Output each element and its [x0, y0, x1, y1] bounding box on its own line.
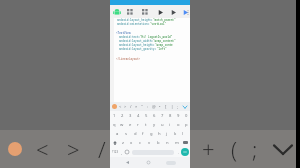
- button[interactable]: n: [163, 138, 172, 147]
- staticText: k: [174, 131, 177, 137]
- button[interactable]: c: [136, 138, 145, 147]
- button[interactable]: t: [142, 120, 150, 129]
- button[interactable]: 7: [158, 111, 166, 120]
- button[interactable]: >: [123, 102, 128, 111]
- button[interactable]: x: [127, 138, 136, 147]
- button[interactable]: ;: [175, 102, 181, 111]
- button[interactable]: Home: [145, 159, 152, 166]
- button[interactable]: Sync project: [182, 8, 188, 16]
- button[interactable]: o: [174, 120, 182, 129]
- staticText: v: [148, 140, 151, 146]
- button[interactable]: ": [139, 102, 145, 111]
- button[interactable]: 8: [166, 111, 174, 120]
- button[interactable]: [: [163, 102, 169, 111]
- button[interactable]: ×: [133, 102, 139, 111]
- staticText: s: [125, 131, 128, 137]
- staticText: m: [175, 140, 179, 146]
- button[interactable]: 9: [174, 111, 182, 120]
- button[interactable]: /: [128, 102, 133, 111]
- button[interactable]: Shift: [110, 138, 119, 147]
- staticText: g: [150, 131, 153, 137]
- staticText: 9: [177, 113, 180, 119]
- button[interactable]: s: [122, 129, 131, 138]
- button[interactable]: e: [126, 120, 134, 129]
- staticText: 8: [169, 113, 172, 119]
- staticText: x: [130, 140, 133, 146]
- button[interactable]: i: [166, 120, 174, 129]
- staticText: r: [137, 122, 139, 128]
- staticText: "Hi! LogcatIs_world": [140, 35, 173, 39]
- staticText: 1: [113, 113, 116, 119]
- staticText: android:text=: [119, 35, 140, 39]
- button[interactable]: 6: [150, 111, 158, 120]
- staticText: y: [153, 122, 156, 128]
- staticText: p: [185, 122, 188, 128]
- button[interactable]: :: [145, 102, 151, 111]
- button[interactable]: m: [172, 138, 181, 147]
- staticText: ,: [121, 150, 123, 155]
- staticText: >: [67, 134, 80, 164]
- button[interactable]: u: [158, 120, 166, 129]
- staticText: :: [147, 104, 149, 109]
- staticText: a: [116, 131, 119, 137]
- button[interactable]: v: [145, 138, 154, 147]
- button[interactable]: Debug: [169, 8, 177, 16]
- button[interactable]: 0: [182, 111, 190, 120]
- staticText: </LinearLayout>: [116, 57, 141, 61]
- staticText: "wrap_content": [153, 39, 176, 43]
- staticText: n: [166, 140, 169, 146]
- button[interactable]: Android Studio: [112, 7, 122, 17]
- staticText: •: [159, 104, 161, 109]
- button[interactable]: 1: [110, 111, 118, 120]
- button[interactable]: l: [179, 129, 187, 138]
- button[interactable]: z: [119, 138, 127, 147]
- button[interactable]: d: [131, 129, 139, 138]
- staticText: 0: [185, 113, 188, 119]
- button[interactable]: p: [182, 120, 190, 129]
- button[interactable]: Symbols: [111, 147, 119, 157]
- button[interactable]: b: [154, 138, 163, 147]
- button[interactable]: k: [171, 129, 179, 138]
- button[interactable]: j: [163, 129, 171, 138]
- staticText: android:layout_width=: [119, 39, 153, 43]
- staticText: l: [182, 131, 184, 137]
- staticText: android:layout_height=: [119, 43, 155, 47]
- button[interactable]: .: [176, 147, 181, 157]
- staticText: @: [152, 104, 156, 109]
- button[interactable]: g: [147, 129, 155, 138]
- button[interactable]: <: [118, 102, 123, 111]
- button[interactable]: Change language: [124, 147, 130, 157]
- button[interactable]: Recent apps: [166, 161, 176, 165]
- button[interactable]: a: [113, 129, 122, 138]
- button[interactable]: 2: [118, 111, 126, 120]
- staticText: ×: [135, 104, 138, 109]
- button[interactable]: Layout view: [141, 8, 149, 16]
- button[interactable]: h: [155, 129, 163, 138]
- button[interactable]: Backspace: [181, 138, 190, 147]
- button[interactable]: f: [139, 129, 147, 138]
- button[interactable]: ,: [119, 147, 124, 157]
- staticText: ": [141, 104, 143, 109]
- button[interactable]: r: [134, 120, 142, 129]
- staticText: ;: [252, 134, 258, 164]
- staticText: 4: [137, 113, 140, 119]
- button[interactable]: 4: [134, 111, 142, 120]
- button[interactable]: |: [169, 102, 175, 111]
- button[interactable]: •: [157, 102, 163, 111]
- staticText: /: [130, 104, 132, 109]
- staticText: 3: [129, 113, 132, 119]
- button[interactable]: Back: [124, 159, 131, 166]
- button[interactable]: q: [110, 120, 118, 129]
- button[interactable]: w: [118, 120, 126, 129]
- button[interactable]: 5: [142, 111, 150, 120]
- button[interactable]: Enter: [181, 148, 189, 156]
- button[interactable]: y: [150, 120, 158, 129]
- button[interactable]: Hide toolbar: [181, 103, 189, 111]
- button[interactable]: Layout view: [126, 8, 134, 16]
- button[interactable]: Run: [156, 8, 164, 16]
- staticText: "wrap_conte: [155, 43, 173, 47]
- button[interactable]: Emoji: [111, 103, 118, 110]
- button[interactable]: @: [151, 102, 157, 111]
- button[interactable]: 3: [126, 111, 134, 120]
